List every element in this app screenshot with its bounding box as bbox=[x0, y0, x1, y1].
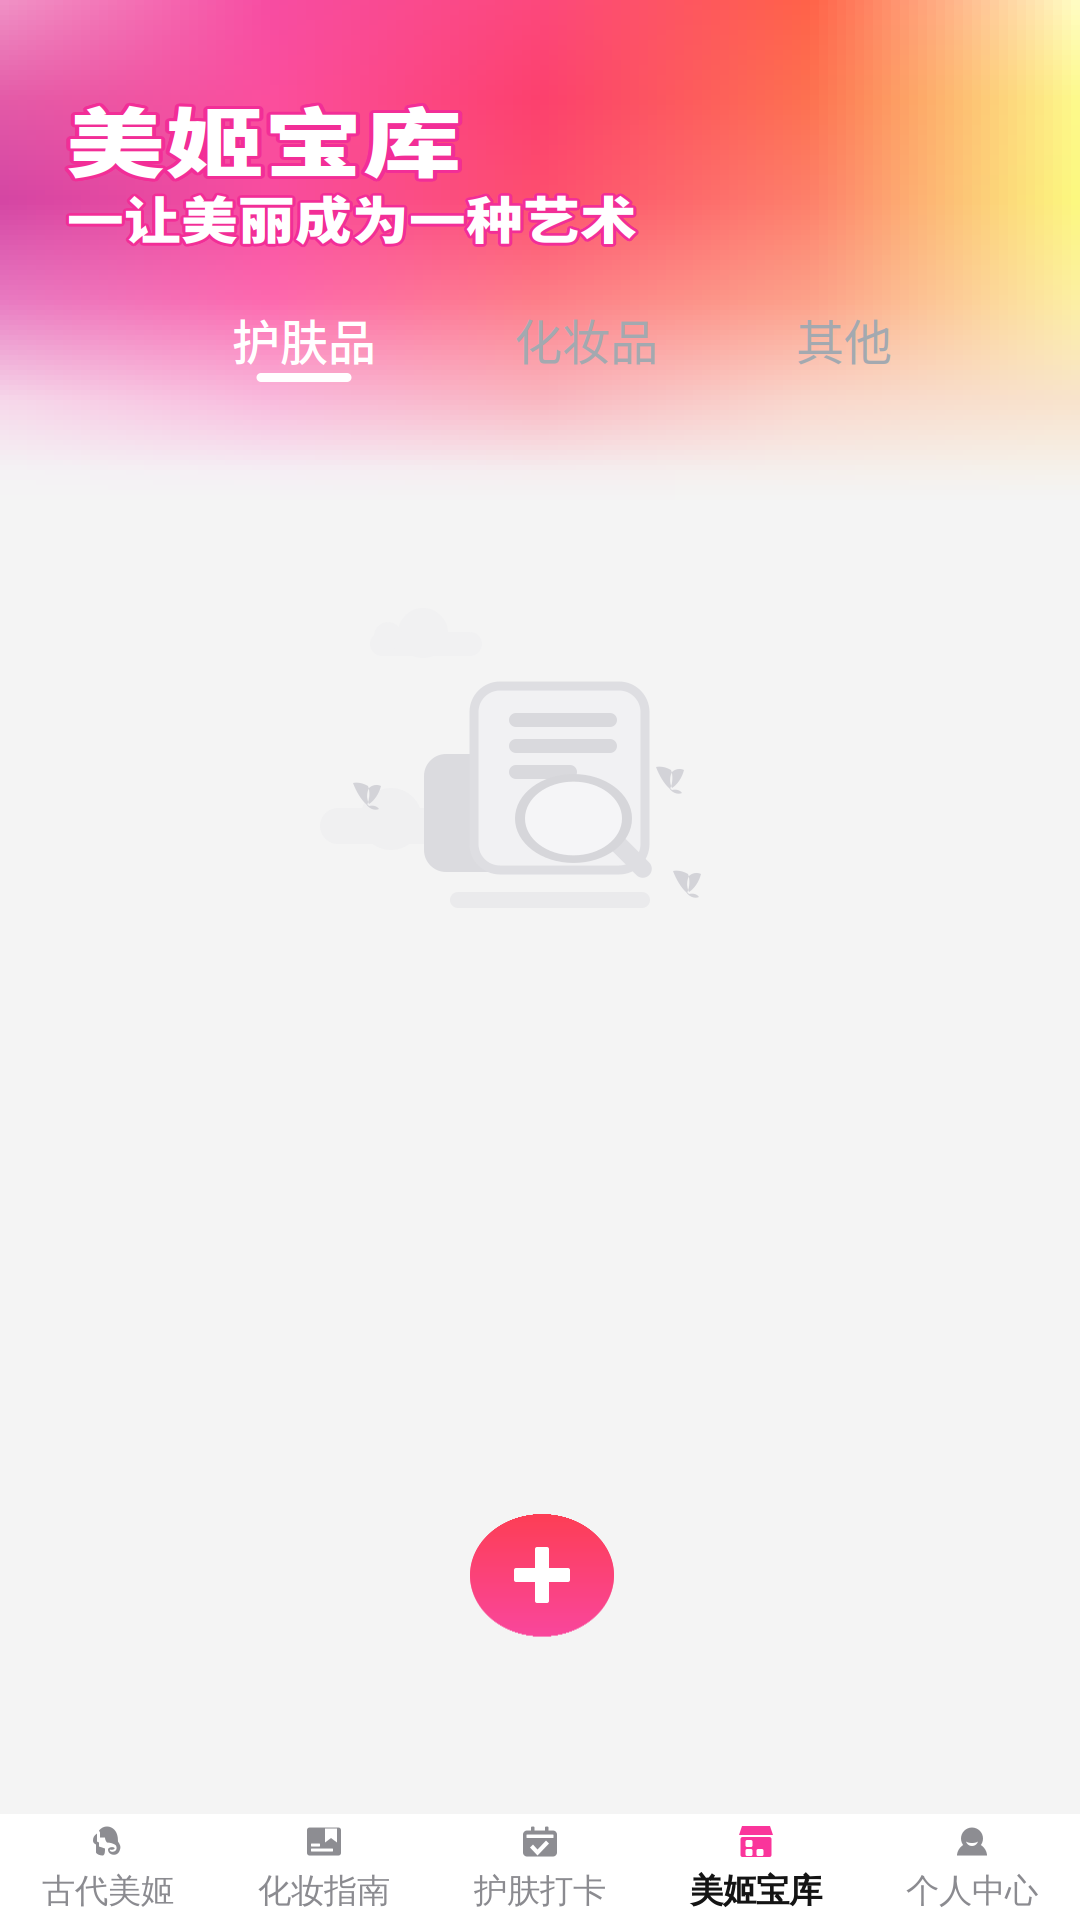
staticText: 美姬宝库 bbox=[690, 1870, 822, 1911]
staticText: 美姬宝库 bbox=[69, 81, 465, 224]
staticText: 一让美丽成为一种艺术 bbox=[67, 178, 637, 260]
staticText: 一让美丽成为一种艺术 bbox=[64, 182, 634, 264]
staticText: 一让美丽成为一种艺术 bbox=[68, 178, 638, 260]
staticText: 化妆指南 bbox=[258, 1870, 390, 1911]
staticText: 美姬宝库 bbox=[69, 87, 465, 230]
button[interactable]: 古代美姬 bbox=[0, 1814, 216, 1920]
button[interactable]: 化妆指南 bbox=[216, 1814, 432, 1920]
staticText: 一让美丽成为一种艺术 bbox=[70, 181, 640, 263]
staticText: 美姬宝库 bbox=[70, 85, 466, 228]
staticText: 一让美丽成为一种艺术 bbox=[70, 182, 640, 264]
staticText: 古代美姬 bbox=[42, 1870, 174, 1911]
staticText: 美姬宝库 bbox=[62, 84, 458, 227]
staticText: 护肤品 bbox=[232, 304, 376, 374]
staticText: 美姬宝库 bbox=[63, 81, 459, 224]
staticText: 美姬宝库 bbox=[64, 88, 460, 231]
staticText: 一让美丽成为一种艺术 bbox=[68, 184, 638, 266]
staticText: 美姬宝库 bbox=[70, 82, 466, 225]
staticText: 一让美丽成为一种艺术 bbox=[66, 178, 636, 260]
staticText: 其他 bbox=[796, 304, 892, 374]
staticText: 一让美丽成为一种艺术 bbox=[69, 179, 639, 261]
staticText: 一让美丽成为一种艺术 bbox=[67, 184, 637, 266]
staticText: 美姬宝库 bbox=[63, 87, 459, 230]
button[interactable]: 其他 bbox=[796, 321, 892, 382]
staticText: 一让美丽成为一种艺术 bbox=[64, 180, 634, 262]
button[interactable]: 护肤品 bbox=[232, 321, 376, 382]
staticText: 个人中心 bbox=[906, 1870, 1038, 1911]
staticText: 化妆品 bbox=[514, 304, 658, 374]
staticText: 一让美丽成为一种艺术 bbox=[66, 184, 636, 266]
staticText: 美姬宝库 bbox=[67, 88, 463, 231]
staticText: 一让美丽成为一种艺术 bbox=[69, 183, 639, 265]
staticText: 美姬宝库 bbox=[66, 80, 462, 223]
staticText: 美姬宝库 bbox=[66, 84, 462, 227]
staticText: 一让美丽成为一种艺术 bbox=[65, 179, 635, 261]
button[interactable]: 个人中心 bbox=[864, 1814, 1080, 1920]
staticText: 美姬宝库 bbox=[64, 80, 460, 223]
staticText: 护肤打卡 bbox=[474, 1870, 606, 1911]
button[interactable]: 护肤打卡 bbox=[432, 1814, 648, 1920]
staticText: 一让美丽成为一种艺术 bbox=[70, 180, 640, 262]
button[interactable]: 化妆品 bbox=[514, 321, 658, 382]
staticText: 美姬宝库 bbox=[70, 84, 466, 227]
staticText: 美姬宝库 bbox=[62, 85, 458, 228]
staticText: 美姬宝库 bbox=[62, 82, 458, 225]
staticText: 一让美丽成为一种艺术 bbox=[67, 181, 637, 263]
button[interactable]: 美姬宝库 bbox=[648, 1814, 864, 1920]
staticText: 一让美丽成为一种艺术 bbox=[64, 181, 634, 263]
staticText: 一让美丽成为一种艺术 bbox=[65, 183, 635, 265]
staticText: 美姬宝库 bbox=[67, 80, 463, 223]
staticText: 美姬宝库 bbox=[66, 88, 462, 231]
